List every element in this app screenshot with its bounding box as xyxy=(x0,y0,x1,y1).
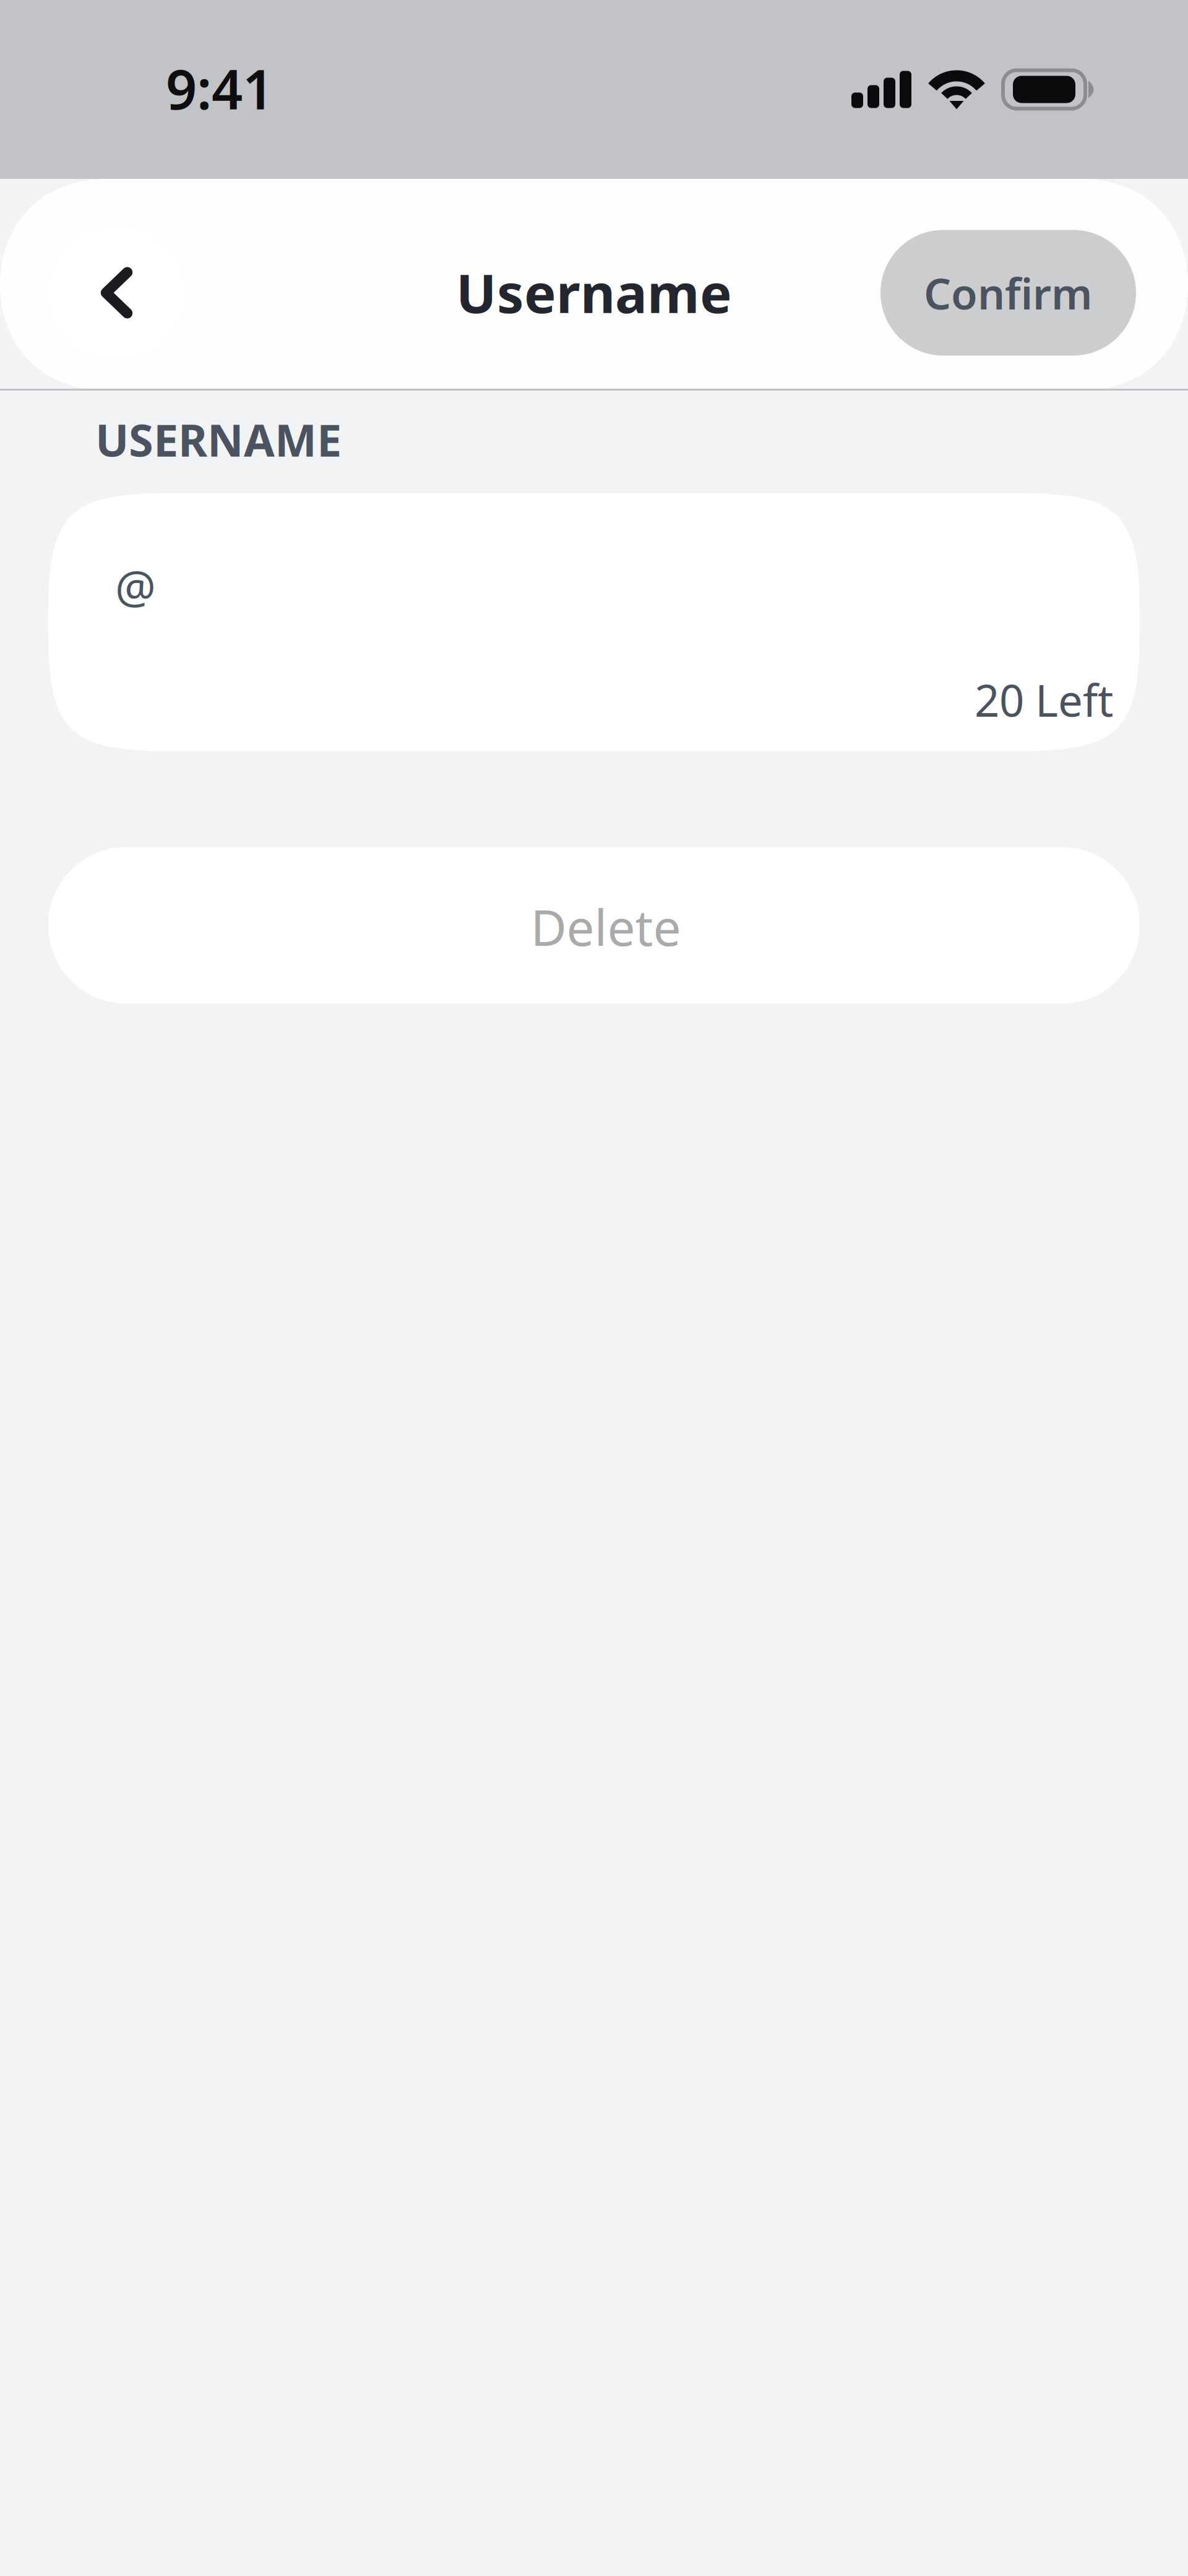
staticText: @ xyxy=(115,556,156,616)
staticText: Delete xyxy=(531,894,681,959)
button[interactable]: Delete xyxy=(48,847,1140,1004)
staticText: 9:41 xyxy=(166,52,273,124)
staticText: Username xyxy=(456,257,732,328)
button[interactable]: Back xyxy=(49,226,184,360)
button[interactable]: @ xyxy=(48,493,1140,751)
staticText: 20 Left xyxy=(975,671,1114,729)
button[interactable]: Confirm xyxy=(880,230,1136,356)
staticText: Confirm xyxy=(924,264,1093,321)
staticText: USERNAME xyxy=(95,410,342,469)
